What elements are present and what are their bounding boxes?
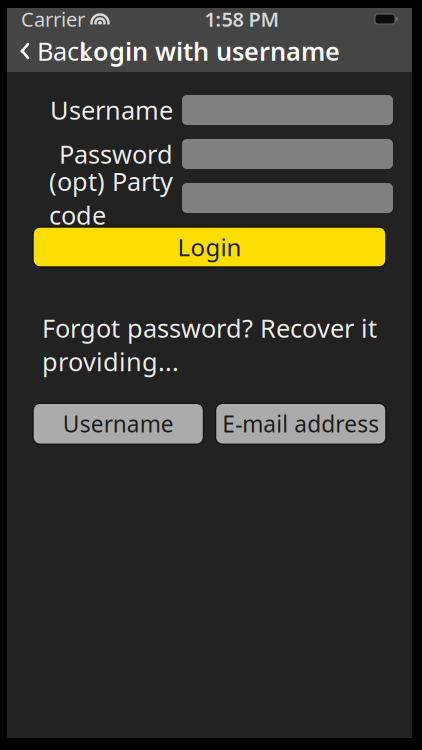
staticText: E-mail address	[222, 409, 379, 439]
staticText: 1:58 PM	[204, 6, 279, 32]
staticText: Username	[50, 93, 173, 127]
button[interactable]: Back	[7, 30, 105, 72]
staticText: Forgot password? Recover it providing...	[42, 311, 377, 378]
button[interactable]: E-mail address	[215, 403, 386, 444]
staticText: Carrier	[21, 6, 85, 32]
staticText: Login with username	[79, 34, 340, 68]
staticText: Back	[37, 34, 93, 68]
staticText: Password	[59, 137, 173, 171]
button[interactable]: Username	[33, 403, 203, 444]
staticText: Login	[177, 231, 241, 263]
button[interactable]: Login	[33, 227, 386, 267]
staticText: Username	[63, 409, 174, 439]
staticText: (opt) Party code	[49, 164, 173, 232]
